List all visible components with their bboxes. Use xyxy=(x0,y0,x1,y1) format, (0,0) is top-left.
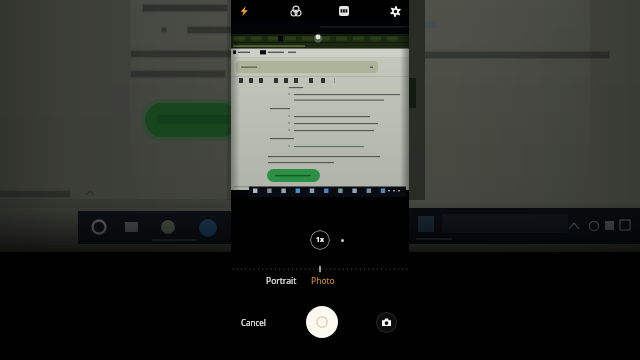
staticText: 1x xyxy=(316,235,325,245)
button[interactable]: Photo xyxy=(307,273,339,288)
button[interactable]: Switch camera xyxy=(376,312,397,333)
button[interactable]: Zoom 1x xyxy=(310,230,330,250)
button[interactable]: More zoom options xyxy=(332,230,352,250)
button[interactable]: Flash xyxy=(234,1,254,21)
staticText: Portrait xyxy=(266,275,297,286)
button[interactable]: Take photo xyxy=(306,306,338,338)
button[interactable]: Portrait xyxy=(262,273,301,288)
button[interactable]: Settings xyxy=(385,1,405,21)
staticText: Photo xyxy=(311,275,335,286)
button[interactable]: Colour filters xyxy=(286,1,306,21)
button[interactable]: Cancel xyxy=(237,314,270,331)
staticText: Cancel xyxy=(241,317,266,328)
button[interactable]: HDR xyxy=(334,1,354,21)
